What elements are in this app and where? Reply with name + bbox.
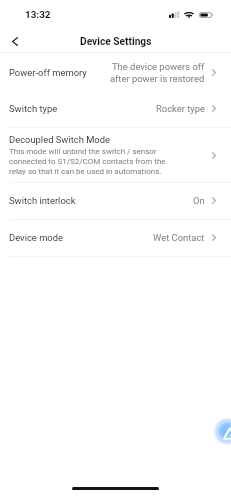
staticText: Decoupled Switch Mode [9,134,110,145]
staticText: Switch type [9,103,58,114]
staticText: after power is restored [110,73,205,84]
staticText: This mode will unbind the switch / senso… [9,147,175,176]
button[interactable]: Switch interlock [0,183,231,219]
button[interactable]: Power-off memory [0,53,231,91]
staticText: Device Settings [80,36,152,48]
staticText: Switch interlock [9,195,76,206]
staticText: Power-off memory [9,67,87,78]
button[interactable]: Decoupled Switch Mode [0,128,231,182]
button[interactable]: Device mode [0,220,231,256]
staticText: Rocker type [156,103,205,114]
staticText: Device mode [9,232,64,243]
button[interactable]: Assistive touch [205,411,231,451]
staticText: Wet Contact [153,232,205,243]
button[interactable]: Back [3,29,26,53]
staticText: The device powers off [112,61,205,72]
staticText: On [193,195,205,206]
staticText: 13:32 [25,9,51,21]
button[interactable]: Switch type [0,91,231,127]
